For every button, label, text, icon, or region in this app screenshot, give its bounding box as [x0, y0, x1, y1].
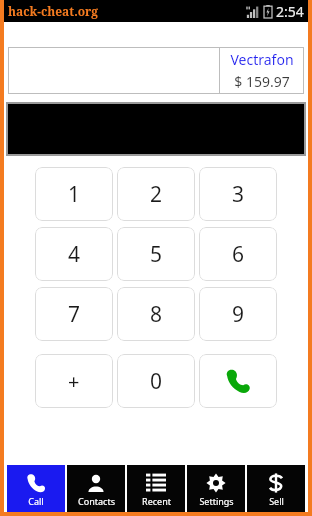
staticText: 6	[232, 240, 245, 269]
staticText: 8	[150, 300, 163, 329]
staticText: 9	[232, 300, 245, 329]
staticText: Vectrafon	[230, 50, 294, 69]
staticText: Settings	[199, 495, 234, 507]
button[interactable]: 4	[35, 227, 113, 281]
button[interactable]: +	[35, 354, 113, 408]
button[interactable]: Vectrafon	[8, 47, 304, 94]
staticText: +	[68, 368, 80, 395]
staticText: 7	[68, 300, 81, 329]
button[interactable]: 6	[199, 227, 277, 281]
button[interactable]: 2	[117, 167, 195, 221]
staticText: 5	[150, 240, 163, 269]
staticText: 1	[68, 180, 81, 209]
button[interactable]: 0	[117, 354, 195, 408]
staticText: Call	[28, 495, 44, 507]
button[interactable]: 3	[199, 167, 277, 221]
staticText: Recent	[142, 495, 171, 507]
staticText: 0	[150, 367, 163, 396]
staticText: 3	[232, 180, 245, 209]
staticText: Contacts	[78, 495, 115, 507]
button[interactable]: Contacts	[67, 465, 125, 512]
button[interactable]: 7	[35, 287, 113, 341]
staticText: Sell	[269, 495, 284, 507]
staticText: 2	[150, 180, 163, 209]
button[interactable]: 1	[35, 167, 113, 221]
button[interactable]: 8	[117, 287, 195, 341]
staticText: 4	[68, 240, 81, 269]
button[interactable]: Call	[199, 354, 277, 408]
button[interactable]: Settings	[187, 465, 245, 512]
staticText: 2:54	[276, 2, 304, 21]
staticText: $ 159.97	[234, 72, 290, 91]
staticText: hack-cheat.org	[8, 3, 99, 19]
button[interactable]: 5	[117, 227, 195, 281]
button[interactable]: 9	[199, 287, 277, 341]
button[interactable]: Sell	[247, 465, 305, 512]
button[interactable]: Recent	[127, 465, 185, 512]
button[interactable]: Call	[7, 465, 65, 512]
